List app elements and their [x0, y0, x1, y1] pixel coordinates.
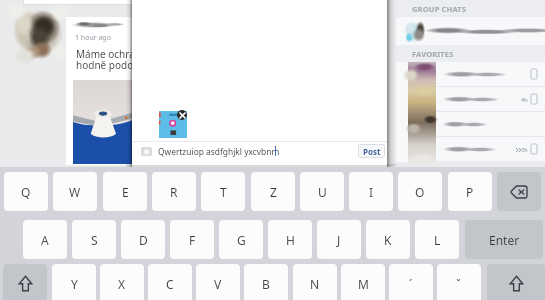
button[interactable]: 3h [396, 137, 545, 162]
button[interactable]: U [300, 172, 344, 211]
staticText: Z [270, 184, 277, 200]
staticText: hodně podobn [76, 58, 146, 72]
button[interactable] [396, 112, 545, 137]
button[interactable]: Enter [465, 220, 543, 259]
staticText: 3h [521, 146, 528, 153]
staticText: ˇ [456, 276, 462, 292]
staticText: Q [21, 184, 31, 200]
button[interactable]: M [341, 264, 385, 300]
staticText: FAVORITES [412, 49, 454, 59]
button[interactable]: W [53, 172, 97, 211]
staticText: Máme ochrani [76, 47, 144, 61]
button[interactable]: Z [251, 172, 295, 211]
staticText: B [262, 276, 270, 292]
button[interactable]: I [349, 172, 393, 211]
button[interactable]: C [148, 264, 192, 300]
staticText: Enter [489, 232, 520, 248]
button[interactable]: L [415, 220, 459, 259]
button[interactable] [396, 62, 545, 87]
button[interactable]: Y [52, 264, 96, 300]
button[interactable] [396, 17, 545, 45]
button[interactable]: Shift [3, 264, 47, 300]
button[interactable]: A [23, 220, 67, 259]
staticText: Qwertzuiop asdfghjkl yxcvbnm [158, 146, 280, 157]
staticText: U [318, 184, 327, 200]
staticText: N [310, 276, 320, 292]
staticText: P [466, 184, 474, 200]
button[interactable]: R [152, 172, 196, 211]
button[interactable]: B [244, 264, 288, 300]
staticText: G [237, 232, 246, 248]
staticText: J [337, 232, 341, 248]
staticText: M [358, 276, 369, 292]
button[interactable]: H [268, 220, 312, 259]
staticText: D [139, 232, 148, 248]
staticText: W [69, 184, 81, 200]
button[interactable]: Q [4, 172, 48, 211]
button[interactable]: G [219, 220, 263, 259]
button[interactable]: V [196, 264, 240, 300]
staticText: ´ [409, 276, 413, 292]
staticText: Post [363, 146, 381, 157]
staticText: R [170, 184, 178, 200]
staticText: V [214, 276, 222, 292]
staticText: T [220, 184, 227, 200]
button[interactable]: X [100, 264, 144, 300]
staticText: A [41, 232, 49, 248]
button[interactable]: Post [358, 144, 385, 158]
staticText: I [369, 184, 374, 200]
button[interactable]: Remove attachment [177, 110, 187, 120]
staticText: 1 hour ago [75, 33, 111, 43]
staticText: O [415, 184, 425, 200]
button[interactable]: Shift [487, 264, 545, 300]
button[interactable]: F [170, 220, 214, 259]
staticText: Y [71, 276, 78, 292]
button[interactable]: ˇ [437, 264, 481, 300]
staticText: 4h [521, 96, 528, 103]
staticText: H [286, 232, 295, 248]
staticText: X [118, 276, 126, 292]
button[interactable]: P [448, 172, 492, 211]
button[interactable]: 4h [396, 87, 545, 112]
button[interactable]: Backspace [497, 172, 541, 211]
button[interactable]: J [317, 220, 361, 259]
button[interactable]: T [201, 172, 245, 211]
button[interactable]: S [72, 220, 116, 259]
button[interactable]: K [366, 220, 410, 259]
staticText: F [189, 232, 196, 248]
staticText: C [166, 276, 174, 292]
button[interactable]: O [398, 172, 442, 211]
staticText: S [91, 232, 98, 248]
staticText: L [434, 232, 441, 248]
button[interactable]: E [103, 172, 147, 211]
button[interactable]: N [293, 264, 337, 300]
button[interactable]: ´ [389, 264, 433, 300]
staticText: GROUP CHATS [412, 4, 466, 14]
staticText: K [384, 232, 392, 248]
staticText: E [122, 184, 129, 200]
button[interactable]: D [121, 220, 165, 259]
